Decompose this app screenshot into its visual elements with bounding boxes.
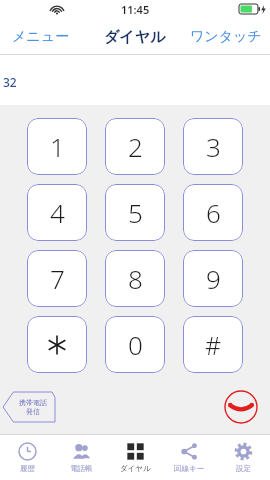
button[interactable]: Call (224, 390, 258, 424)
staticText: 5 (128, 195, 143, 230)
button[interactable]: 6 (183, 184, 243, 241)
button[interactable]: # (183, 316, 243, 373)
staticText: ダイヤル (120, 464, 151, 473)
staticText: 0 (128, 327, 143, 362)
button[interactable]: 1 (27, 118, 87, 175)
button[interactable]: ダイヤル (108, 435, 162, 480)
button[interactable]: 電話帳 (54, 435, 108, 480)
staticText: 32 (3, 74, 17, 90)
staticText: 設定 (236, 464, 251, 473)
staticText: 1 (50, 129, 65, 164)
staticText: 8 (128, 261, 143, 296)
staticText: メニュー (12, 28, 69, 46)
button[interactable]: 2 (105, 118, 165, 175)
staticText: ワンタッチ (190, 28, 262, 46)
button[interactable]: ダイヤル (100, 24, 170, 51)
button[interactable] (27, 316, 87, 373)
button[interactable]: 4 (27, 184, 87, 241)
staticText: ダイヤル (104, 28, 166, 47)
staticText: 4 (50, 195, 65, 230)
button[interactable]: 3 (183, 118, 243, 175)
staticText: 回線キー (174, 464, 205, 473)
button[interactable]: 携帯電話 (3, 392, 55, 422)
button[interactable]: 32 (0, 55, 270, 105)
staticText: 発信 (26, 407, 40, 416)
button[interactable]: メニュー (8, 24, 73, 50)
button[interactable]: 履歴 (0, 435, 54, 480)
button[interactable]: 7 (27, 250, 87, 307)
staticText: # (205, 328, 222, 362)
button[interactable]: 0 (105, 316, 165, 373)
staticText: 9 (206, 261, 221, 296)
staticText: 携帯電話 (19, 398, 47, 407)
staticText: 履歴 (20, 464, 35, 473)
staticText: 3 (206, 129, 221, 164)
button[interactable]: 9 (183, 250, 243, 307)
staticText: 7 (50, 261, 65, 296)
staticText: 6 (206, 195, 221, 230)
button[interactable]: 5 (105, 184, 165, 241)
button[interactable]: ワンタッチ (186, 24, 266, 50)
button[interactable]: 8 (105, 250, 165, 307)
button[interactable]: 設定 (216, 435, 270, 480)
staticText: 11:45 (121, 2, 150, 17)
button[interactable]: 回線キー (162, 435, 216, 480)
staticText: 2 (128, 129, 143, 164)
staticText: 電話帳 (70, 464, 93, 473)
